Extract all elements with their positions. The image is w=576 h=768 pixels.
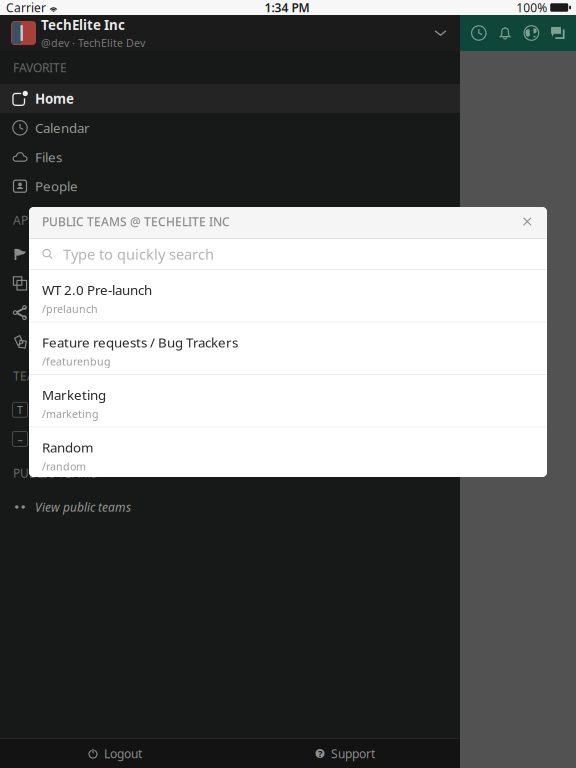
button[interactable]: Tasks (0, 240, 460, 269)
staticText: Calendar (35, 119, 90, 137)
button[interactable]: – (0, 424, 460, 454)
staticText: Type to quickly search (63, 244, 214, 264)
button[interactable]: Boards (0, 327, 460, 356)
staticText: Design (35, 430, 78, 448)
staticText: APPS (13, 212, 42, 228)
button[interactable]: View public teams (0, 492, 460, 522)
staticText: 100% (516, 0, 547, 15)
button[interactable]: Feature requests / Bug Trackers (29, 322, 547, 374)
staticText: Boards (35, 333, 78, 351)
staticText: FAVORITE (13, 59, 67, 75)
button[interactable]: T (0, 395, 460, 424)
button[interactable]: TechElite Inc (0, 15, 460, 51)
staticText: /random (42, 459, 86, 473)
staticText: Logout (104, 745, 142, 761)
button[interactable]: Files (0, 142, 460, 172)
button[interactable]: Marketing (29, 375, 547, 426)
button[interactable]: Notifications (498, 25, 513, 40)
staticText: /marketing (42, 407, 99, 421)
button[interactable]: Public teams (523, 25, 539, 41)
staticText: PUBLIC TEAMS (13, 465, 98, 481)
button[interactable]: People (0, 172, 460, 201)
button[interactable]: Home (0, 84, 460, 113)
staticText: ? (318, 747, 322, 760)
staticText: @dev · TechElite Dev (41, 36, 145, 50)
button[interactable]: WT 2.0 Pre-launch (29, 270, 547, 321)
staticText: People (35, 177, 78, 195)
staticText: /featurenbug (42, 354, 111, 368)
staticText: View public teams (35, 499, 131, 515)
staticText: Feature requests / Bug Trackers (42, 333, 238, 351)
staticText: WT 2.0 Pre-launch (42, 281, 152, 299)
button[interactable]: Messages (550, 25, 565, 40)
staticText: Marketing (42, 386, 106, 404)
button[interactable]: Notes (0, 269, 460, 298)
staticText: Support (331, 745, 375, 761)
staticText: Files (35, 148, 62, 166)
staticText: Carrier (6, 0, 46, 15)
button[interactable]: Calendar (0, 113, 460, 142)
staticText: Tasks (35, 245, 67, 263)
button[interactable]: ? (230, 739, 460, 768)
button[interactable]: Workflows (0, 298, 460, 327)
button[interactable]: Logout (0, 739, 230, 768)
staticText: TechElite Inc (41, 16, 125, 34)
staticText: /prelaunch (42, 302, 98, 316)
staticText: PUBLIC TEAMS @ TECHELITE INC (42, 213, 230, 229)
staticText: Random (42, 438, 93, 456)
staticText: Workflows (35, 304, 100, 321)
staticText: T (17, 403, 23, 417)
button[interactable]: Close (515, 210, 539, 233)
staticText: Notes (35, 274, 72, 292)
button[interactable]: Recent (471, 25, 487, 41)
button[interactable]: Random (29, 427, 547, 479)
staticText: TEAMS (13, 368, 53, 384)
staticText: 1:34 PM (265, 0, 310, 15)
staticText: – (17, 432, 22, 446)
staticText: TechElite (35, 401, 89, 419)
staticText: Home (35, 90, 74, 107)
